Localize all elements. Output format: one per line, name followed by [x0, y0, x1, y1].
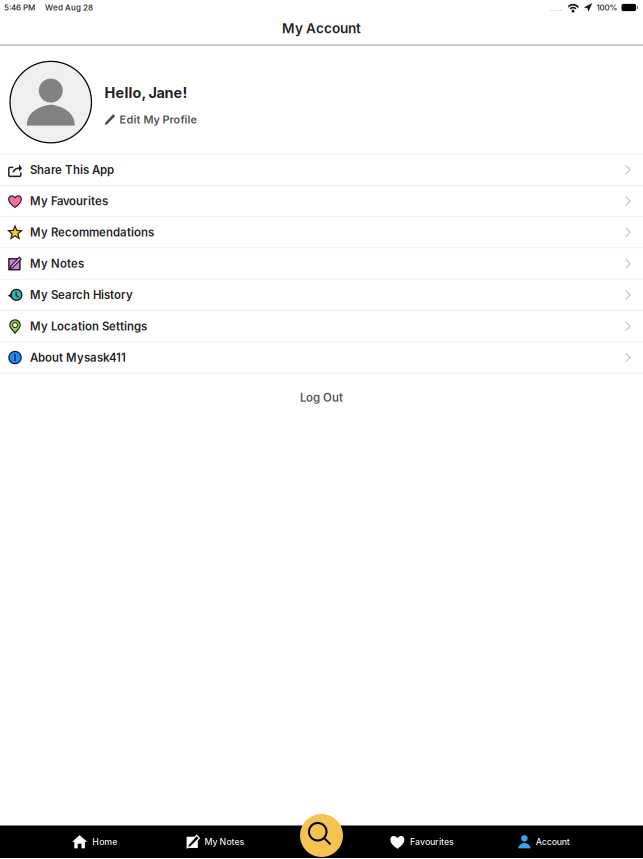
staticText: My Notes	[30, 257, 84, 271]
staticText: Edit My Profile	[119, 113, 196, 126]
staticText: My Account	[282, 20, 361, 36]
staticText: Wed Aug 28	[45, 3, 93, 12]
staticText: My Favourites	[30, 194, 108, 208]
button[interactable]: Account	[518, 826, 570, 858]
staticText: Home	[92, 836, 117, 847]
button[interactable]: My Notes	[0, 248, 643, 280]
staticText: Hello, Jane!	[104, 84, 187, 101]
button[interactable]: Home	[72, 826, 117, 858]
button[interactable]: Log Out	[0, 374, 643, 422]
staticText: ....	[550, 2, 562, 13]
staticText: My Notes	[205, 836, 245, 847]
staticText: My Location Settings	[30, 319, 147, 333]
staticText: About Mysask411	[30, 351, 126, 364]
button[interactable]: My Search History	[0, 280, 643, 311]
button[interactable]: My Favourites	[0, 186, 643, 217]
button[interactable]: Edit My Profile	[104, 101, 196, 126]
button[interactable]: My Recommendations	[0, 217, 643, 248]
button[interactable]: My Location Settings	[0, 311, 643, 342]
button[interactable]: About Mysask411	[0, 342, 643, 374]
staticText: Share This App	[30, 163, 114, 177]
staticText: Account	[536, 836, 570, 847]
staticText: My Recommendations	[30, 225, 154, 239]
staticText: Log Out	[300, 391, 343, 405]
button[interactable]: Favourites	[390, 826, 454, 858]
button[interactable]: Share This App	[0, 155, 643, 186]
staticText: 100%	[596, 3, 617, 12]
staticText: My Search History	[30, 288, 133, 302]
staticText: Favourites	[410, 836, 454, 847]
staticText: 5:46 PM	[4, 3, 35, 12]
button[interactable]: Search	[300, 814, 343, 857]
button[interactable]: My Notes	[186, 826, 245, 858]
